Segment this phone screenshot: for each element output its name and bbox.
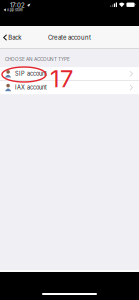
staticText: 17	[50, 64, 73, 93]
staticText: App Store	[7, 8, 23, 12]
staticText: IAX account	[15, 84, 47, 91]
button[interactable]: SIP account	[0, 67, 139, 80]
button[interactable]: IAX account	[0, 81, 139, 94]
staticText: Back	[8, 34, 21, 41]
button[interactable]: Back	[0, 26, 26, 48]
staticText: 17:02	[10, 2, 25, 9]
staticText: Create account	[48, 34, 91, 41]
staticText: CHOOSE AN ACCOUNT TYPE	[5, 56, 70, 62]
staticText: SIP account	[15, 70, 47, 77]
